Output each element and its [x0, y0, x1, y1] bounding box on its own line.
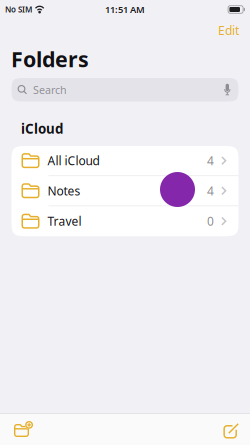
staticText: Search: [33, 83, 67, 97]
staticText: 4: [207, 153, 214, 169]
button[interactable]: All iCloud: [11, 146, 238, 176]
button[interactable]: Edit: [204, 17, 250, 43]
staticText: No SIM: [5, 4, 32, 15]
staticText: Notes: [47, 183, 80, 199]
staticText: 4: [207, 183, 214, 199]
button[interactable]: New Note: [209, 413, 250, 445]
staticText: Folders: [11, 45, 89, 73]
button[interactable]: Travel: [11, 206, 238, 236]
button[interactable]: Notes: [11, 176, 238, 206]
staticText: 11:51 AM: [105, 3, 145, 16]
staticText: All iCloud: [47, 153, 99, 169]
staticText: Edit: [218, 22, 239, 38]
staticText: 0: [207, 213, 214, 229]
staticText: Travel: [47, 213, 81, 229]
button[interactable]: New Folder: [0, 413, 47, 445]
staticText: iCloud: [21, 120, 63, 137]
